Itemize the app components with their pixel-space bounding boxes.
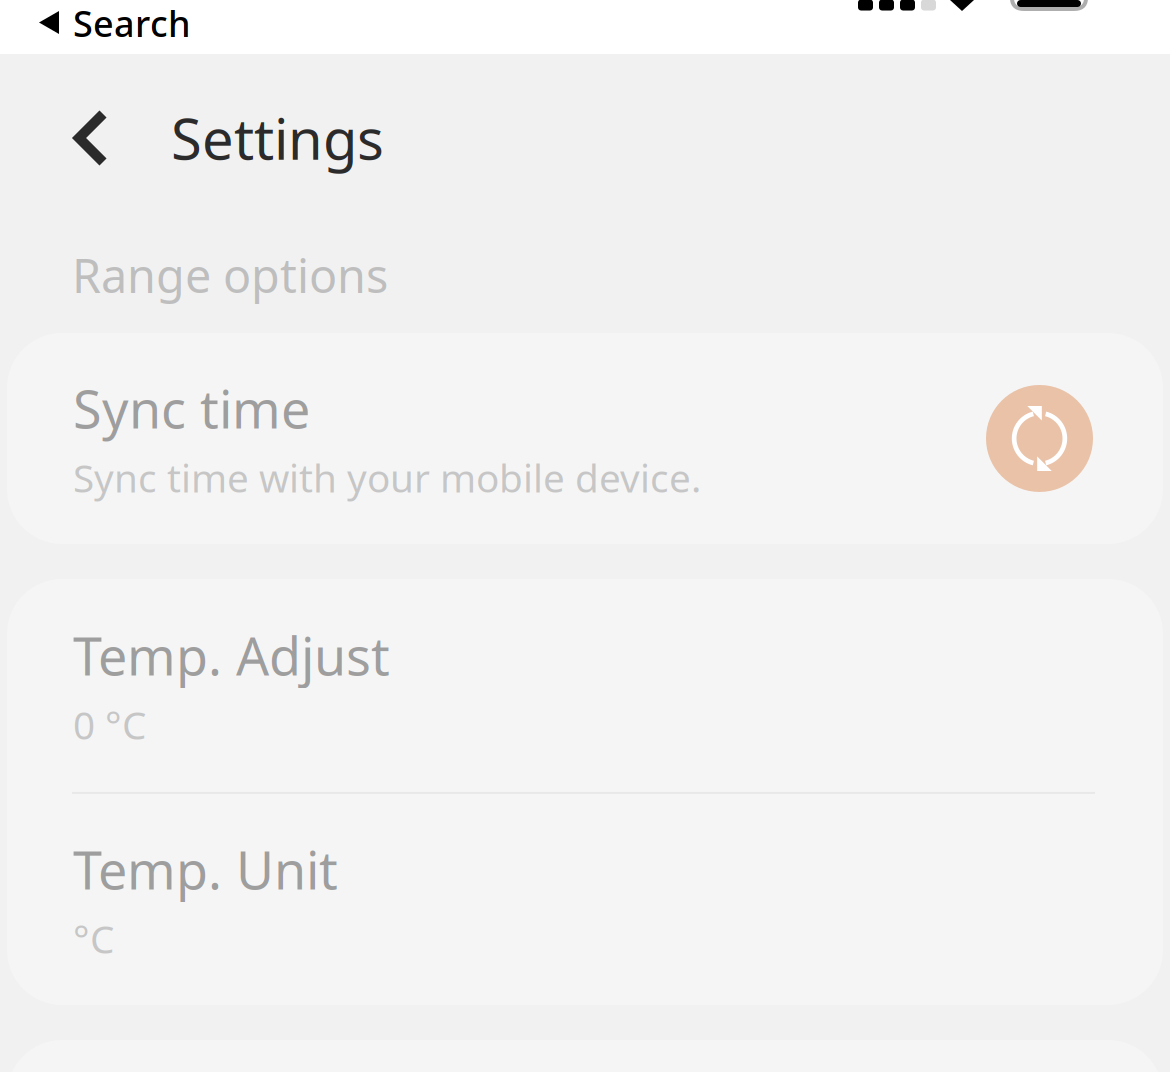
staticText: Search (73, 0, 191, 47)
staticText: °C (73, 913, 114, 964)
button[interactable]: Search (0, 0, 191, 55)
staticText: Temp. Adjust (73, 621, 390, 690)
staticText: Sync time (73, 374, 310, 443)
staticText: Sync time with your mobile device. (73, 452, 701, 503)
button[interactable]: Back (0, 84, 171, 192)
button[interactable]: Sync time (7, 333, 1163, 544)
staticText: Range options (72, 244, 388, 306)
staticText: 0 °C (73, 699, 146, 750)
button[interactable]: Temp. Adjust (7, 579, 1163, 792)
staticText: Settings (171, 101, 384, 175)
staticText: Temp. Unit (73, 835, 338, 904)
button[interactable]: Temp. Unit (7, 794, 1163, 1005)
